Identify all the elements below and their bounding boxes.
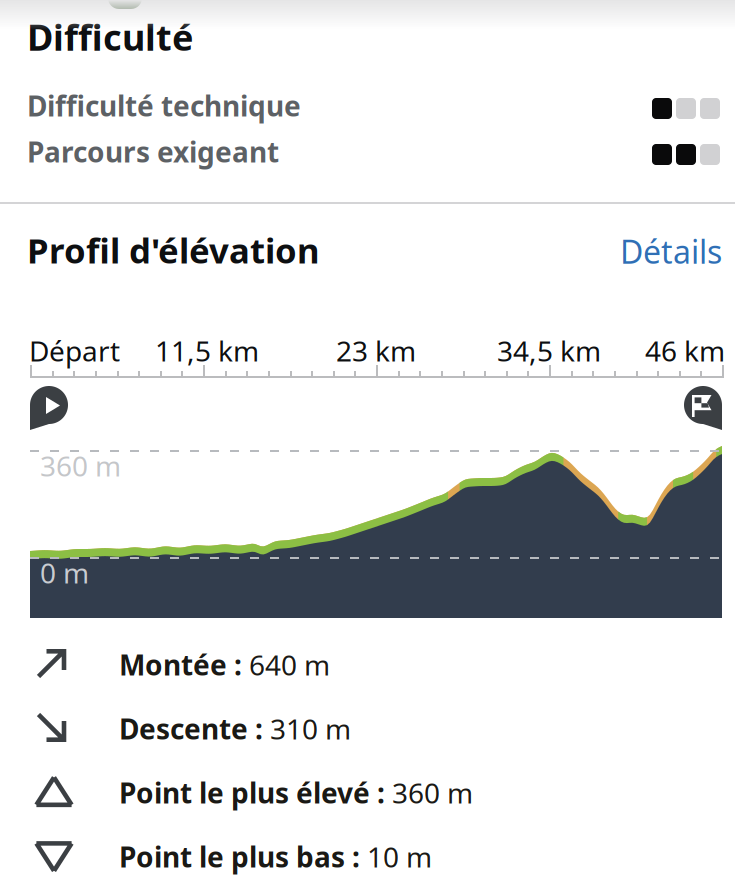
staticText: Montée : 640 m xyxy=(119,646,330,683)
staticText: Point le plus élevé : 360 m xyxy=(119,774,473,811)
staticText: 0 m xyxy=(40,554,89,591)
button[interactable]: Détails xyxy=(620,230,722,272)
staticText: Difficulté xyxy=(27,13,193,61)
staticText: 34,5 km xyxy=(497,332,601,369)
staticText: 360 m xyxy=(40,447,121,484)
staticText: Détails xyxy=(620,230,722,272)
staticText: 11,5 km xyxy=(155,332,259,369)
staticText: 23 km xyxy=(336,332,416,369)
staticText: Profil d'élévation xyxy=(27,227,320,273)
staticText: 46 km xyxy=(645,332,725,369)
staticText: Descente : 310 m xyxy=(119,710,351,747)
staticText: Parcours exigeant xyxy=(27,133,279,170)
staticText: Difficulté technique xyxy=(27,87,301,124)
staticText: Départ xyxy=(29,332,120,369)
staticText: Point le plus bas : 10 m xyxy=(119,838,432,875)
